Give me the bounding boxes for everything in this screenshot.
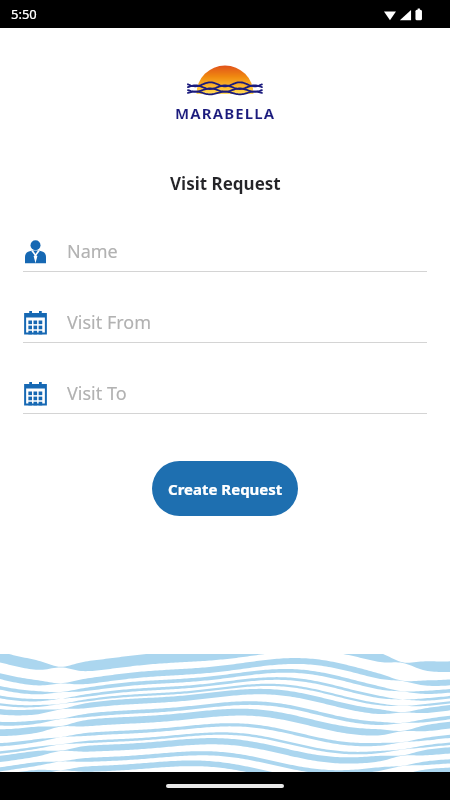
- other: Name: [23, 239, 48, 264]
- staticText: Visit Request: [170, 172, 281, 195]
- button[interactable]: Name: [23, 239, 427, 272]
- other: Visit To: [23, 381, 48, 406]
- button[interactable]: Create Request: [152, 461, 298, 516]
- button[interactable]: Visit From: [23, 310, 427, 343]
- staticText: Visit From: [67, 310, 152, 335]
- staticText: Visit To: [67, 381, 127, 406]
- staticText: MARABELLA: [175, 103, 276, 123]
- button[interactable]: Visit To: [23, 381, 427, 414]
- other: Visit From: [23, 310, 48, 335]
- staticText: 5:50: [11, 5, 37, 23]
- staticText: Create Request: [168, 479, 283, 499]
- staticText: Name: [67, 239, 118, 264]
